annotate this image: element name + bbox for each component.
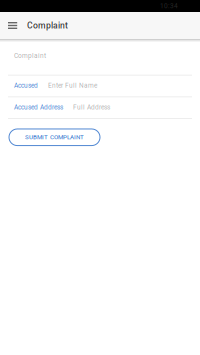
staticText: Complaint xyxy=(27,20,68,31)
staticText: Accused xyxy=(14,82,38,89)
button[interactable]: SUBMIT COMPLAINT xyxy=(9,129,100,146)
staticText: SUBMIT COMPLAINT xyxy=(25,134,84,141)
button[interactable]: Menu xyxy=(0,12,27,39)
staticText: Accused Address xyxy=(14,103,63,111)
staticText: Full Address xyxy=(73,103,110,111)
staticText: 10:34 xyxy=(160,2,178,10)
staticText: Enter Full Name xyxy=(48,82,97,89)
staticText: Complaint xyxy=(14,52,46,60)
